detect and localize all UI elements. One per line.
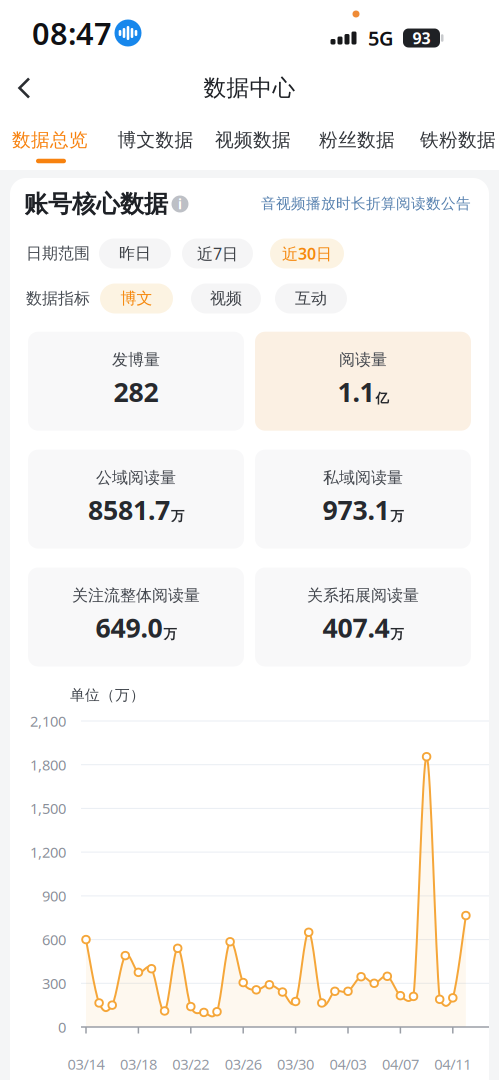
staticText: 5G bbox=[368, 25, 394, 51]
staticText: 博文 bbox=[120, 289, 152, 308]
staticText: 08:47 bbox=[32, 13, 112, 53]
staticText: 973.1 bbox=[322, 492, 389, 527]
staticText: 数据指标 bbox=[26, 289, 90, 308]
staticText: 1.1 bbox=[337, 374, 374, 409]
staticText: 03/22 bbox=[172, 1054, 209, 1074]
staticText: 03/26 bbox=[225, 1054, 262, 1074]
staticText: 私域阅读量 bbox=[323, 468, 403, 487]
staticText: 649.0 bbox=[95, 610, 162, 645]
staticText: 亿 bbox=[375, 390, 388, 406]
staticText: 数据总览 bbox=[12, 128, 88, 151]
staticText: 音视频播放时长折算阅读数公告 bbox=[261, 194, 471, 212]
staticText: 万 bbox=[163, 626, 176, 642]
staticText: 03/14 bbox=[67, 1054, 104, 1074]
staticText: 日期范围 bbox=[26, 244, 90, 263]
staticText: 93 bbox=[412, 27, 430, 49]
staticText: 博文数据 bbox=[117, 128, 193, 151]
staticText: 昨日 bbox=[119, 244, 151, 263]
staticText: 关注流整体阅读量 bbox=[72, 586, 200, 605]
staticText: 铁粉数据 bbox=[420, 128, 496, 151]
staticText: 近7日 bbox=[197, 243, 238, 264]
staticText: 600 bbox=[42, 930, 66, 949]
staticText: 407.4 bbox=[322, 610, 389, 645]
staticText: 账号核心数据 bbox=[24, 189, 168, 219]
staticText: 1,200 bbox=[30, 842, 66, 862]
staticText: 万 bbox=[390, 508, 403, 524]
staticText: 04/07 bbox=[382, 1054, 419, 1074]
staticText: 发博量 bbox=[112, 350, 160, 370]
staticText: 1,500 bbox=[30, 799, 66, 818]
staticText: 04/11 bbox=[434, 1054, 471, 1074]
staticText: 视频 bbox=[210, 289, 242, 308]
staticText: 1,800 bbox=[30, 755, 66, 774]
staticText: 900 bbox=[42, 886, 66, 906]
staticText: 03/30 bbox=[277, 1054, 314, 1074]
staticText: 04/03 bbox=[329, 1054, 366, 1074]
staticText: 公域阅读量 bbox=[96, 468, 176, 487]
staticText: 阅读量 bbox=[339, 350, 387, 370]
staticText: 视频数据 bbox=[215, 128, 291, 151]
staticText: 粉丝数据 bbox=[319, 128, 395, 151]
staticText: 数据中心 bbox=[203, 74, 295, 102]
staticText: 近30日 bbox=[282, 243, 332, 264]
staticText: 万 bbox=[390, 626, 403, 642]
staticText: 万 bbox=[171, 508, 184, 524]
staticText: 2,100 bbox=[30, 711, 66, 731]
staticText: 282 bbox=[113, 374, 158, 409]
staticText: 8581.7 bbox=[88, 492, 170, 527]
staticText: 单位（万） bbox=[70, 686, 145, 704]
staticText: i bbox=[178, 195, 182, 213]
staticText: 互动 bbox=[295, 289, 327, 308]
staticText: 03/18 bbox=[120, 1054, 157, 1074]
staticText: 关系拓展阅读量 bbox=[307, 586, 419, 605]
staticText: 300 bbox=[42, 974, 66, 993]
staticText: 0 bbox=[58, 1017, 66, 1037]
